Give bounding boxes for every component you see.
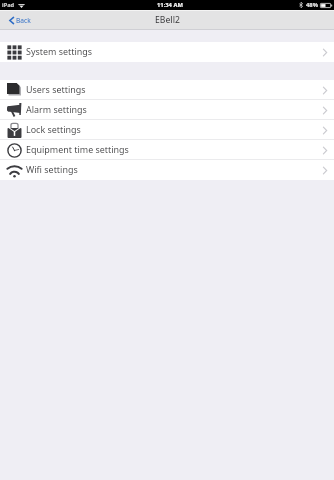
- staticText: Wifi settings: [26, 163, 78, 175]
- staticText: System settings: [26, 45, 93, 57]
- staticText: Lock settings: [26, 123, 81, 135]
- button[interactable]: Users settings: [0, 80, 334, 100]
- button[interactable]: System settings: [0, 42, 334, 62]
- staticText: Back: [16, 16, 31, 25]
- staticText: Users settings: [26, 83, 86, 95]
- button[interactable]: Equipment time settings: [0, 140, 334, 160]
- button[interactable]: Alarm settings: [0, 100, 334, 120]
- staticText: 11:34 AM: [157, 1, 183, 9]
- staticText: 48%: [306, 1, 318, 9]
- button[interactable]: Wifi settings: [0, 160, 334, 180]
- staticText: EBell2: [155, 14, 180, 26]
- staticText: Alarm settings: [26, 103, 87, 115]
- button[interactable]: Back: [0, 16, 37, 25]
- staticText: iPad: [2, 1, 15, 9]
- staticText: Equipment time settings: [26, 143, 129, 155]
- button[interactable]: Lock settings: [0, 120, 334, 140]
